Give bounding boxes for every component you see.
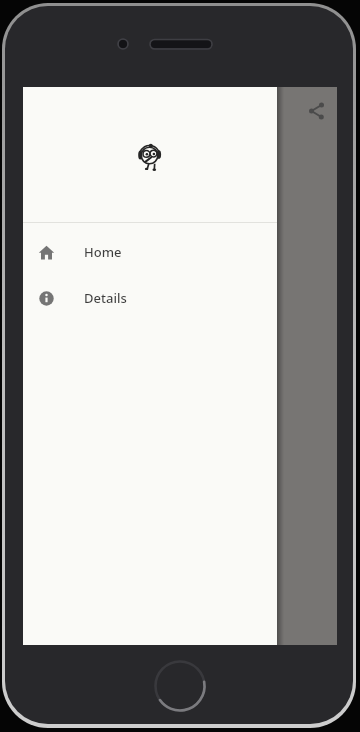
button[interactable]: Home bbox=[23, 229, 277, 275]
button[interactable]: Details bbox=[23, 275, 277, 321]
staticText: Home bbox=[84, 243, 122, 261]
staticText: Details bbox=[84, 289, 127, 307]
button[interactable] bbox=[305, 100, 329, 124]
